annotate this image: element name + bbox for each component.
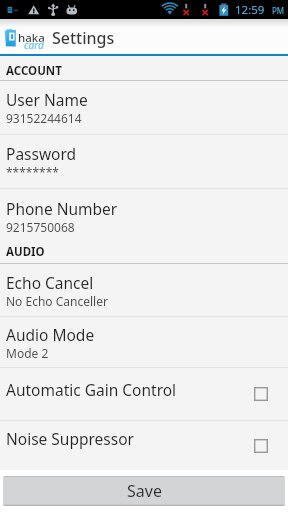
staticText: Phone Number <box>6 198 118 219</box>
staticText: Mode 2 <box>6 345 49 361</box>
staticText: Save <box>127 480 162 502</box>
staticText: Noise Suppressor <box>6 428 134 449</box>
button[interactable]: Dhaka Card home <box>0 19 52 56</box>
staticText: ACCOUNT <box>6 63 62 79</box>
button[interactable]: Automatic Gain Control <box>0 368 288 421</box>
button[interactable]: Audio Mode <box>0 317 288 368</box>
staticText: Audio Mode <box>6 324 95 345</box>
staticText: haka <box>18 30 45 46</box>
button[interactable]: Phone Number <box>0 189 288 243</box>
staticText: AUDIO <box>6 244 45 260</box>
button[interactable]: User Name <box>0 81 288 135</box>
staticText: User Name <box>6 89 88 110</box>
staticText: 93152244614 <box>6 110 82 126</box>
staticText: No Echo Canceller <box>6 293 108 309</box>
button[interactable]: Save <box>3 476 285 506</box>
staticText: PM <box>272 5 285 16</box>
staticText: Password <box>6 143 77 164</box>
staticText: Echo Cancel <box>6 272 94 293</box>
staticText: 12:59 <box>235 2 265 18</box>
staticText: 9215750068 <box>6 219 75 235</box>
button[interactable]: Echo Cancel <box>0 264 288 317</box>
button[interactable]: Noise Suppressor <box>0 421 288 470</box>
staticText: Automatic Gain Control <box>6 379 177 400</box>
staticText: Settings <box>52 27 115 49</box>
staticText: ******** <box>6 164 59 180</box>
staticText: card <box>24 38 44 52</box>
button[interactable]: Password <box>0 135 288 189</box>
